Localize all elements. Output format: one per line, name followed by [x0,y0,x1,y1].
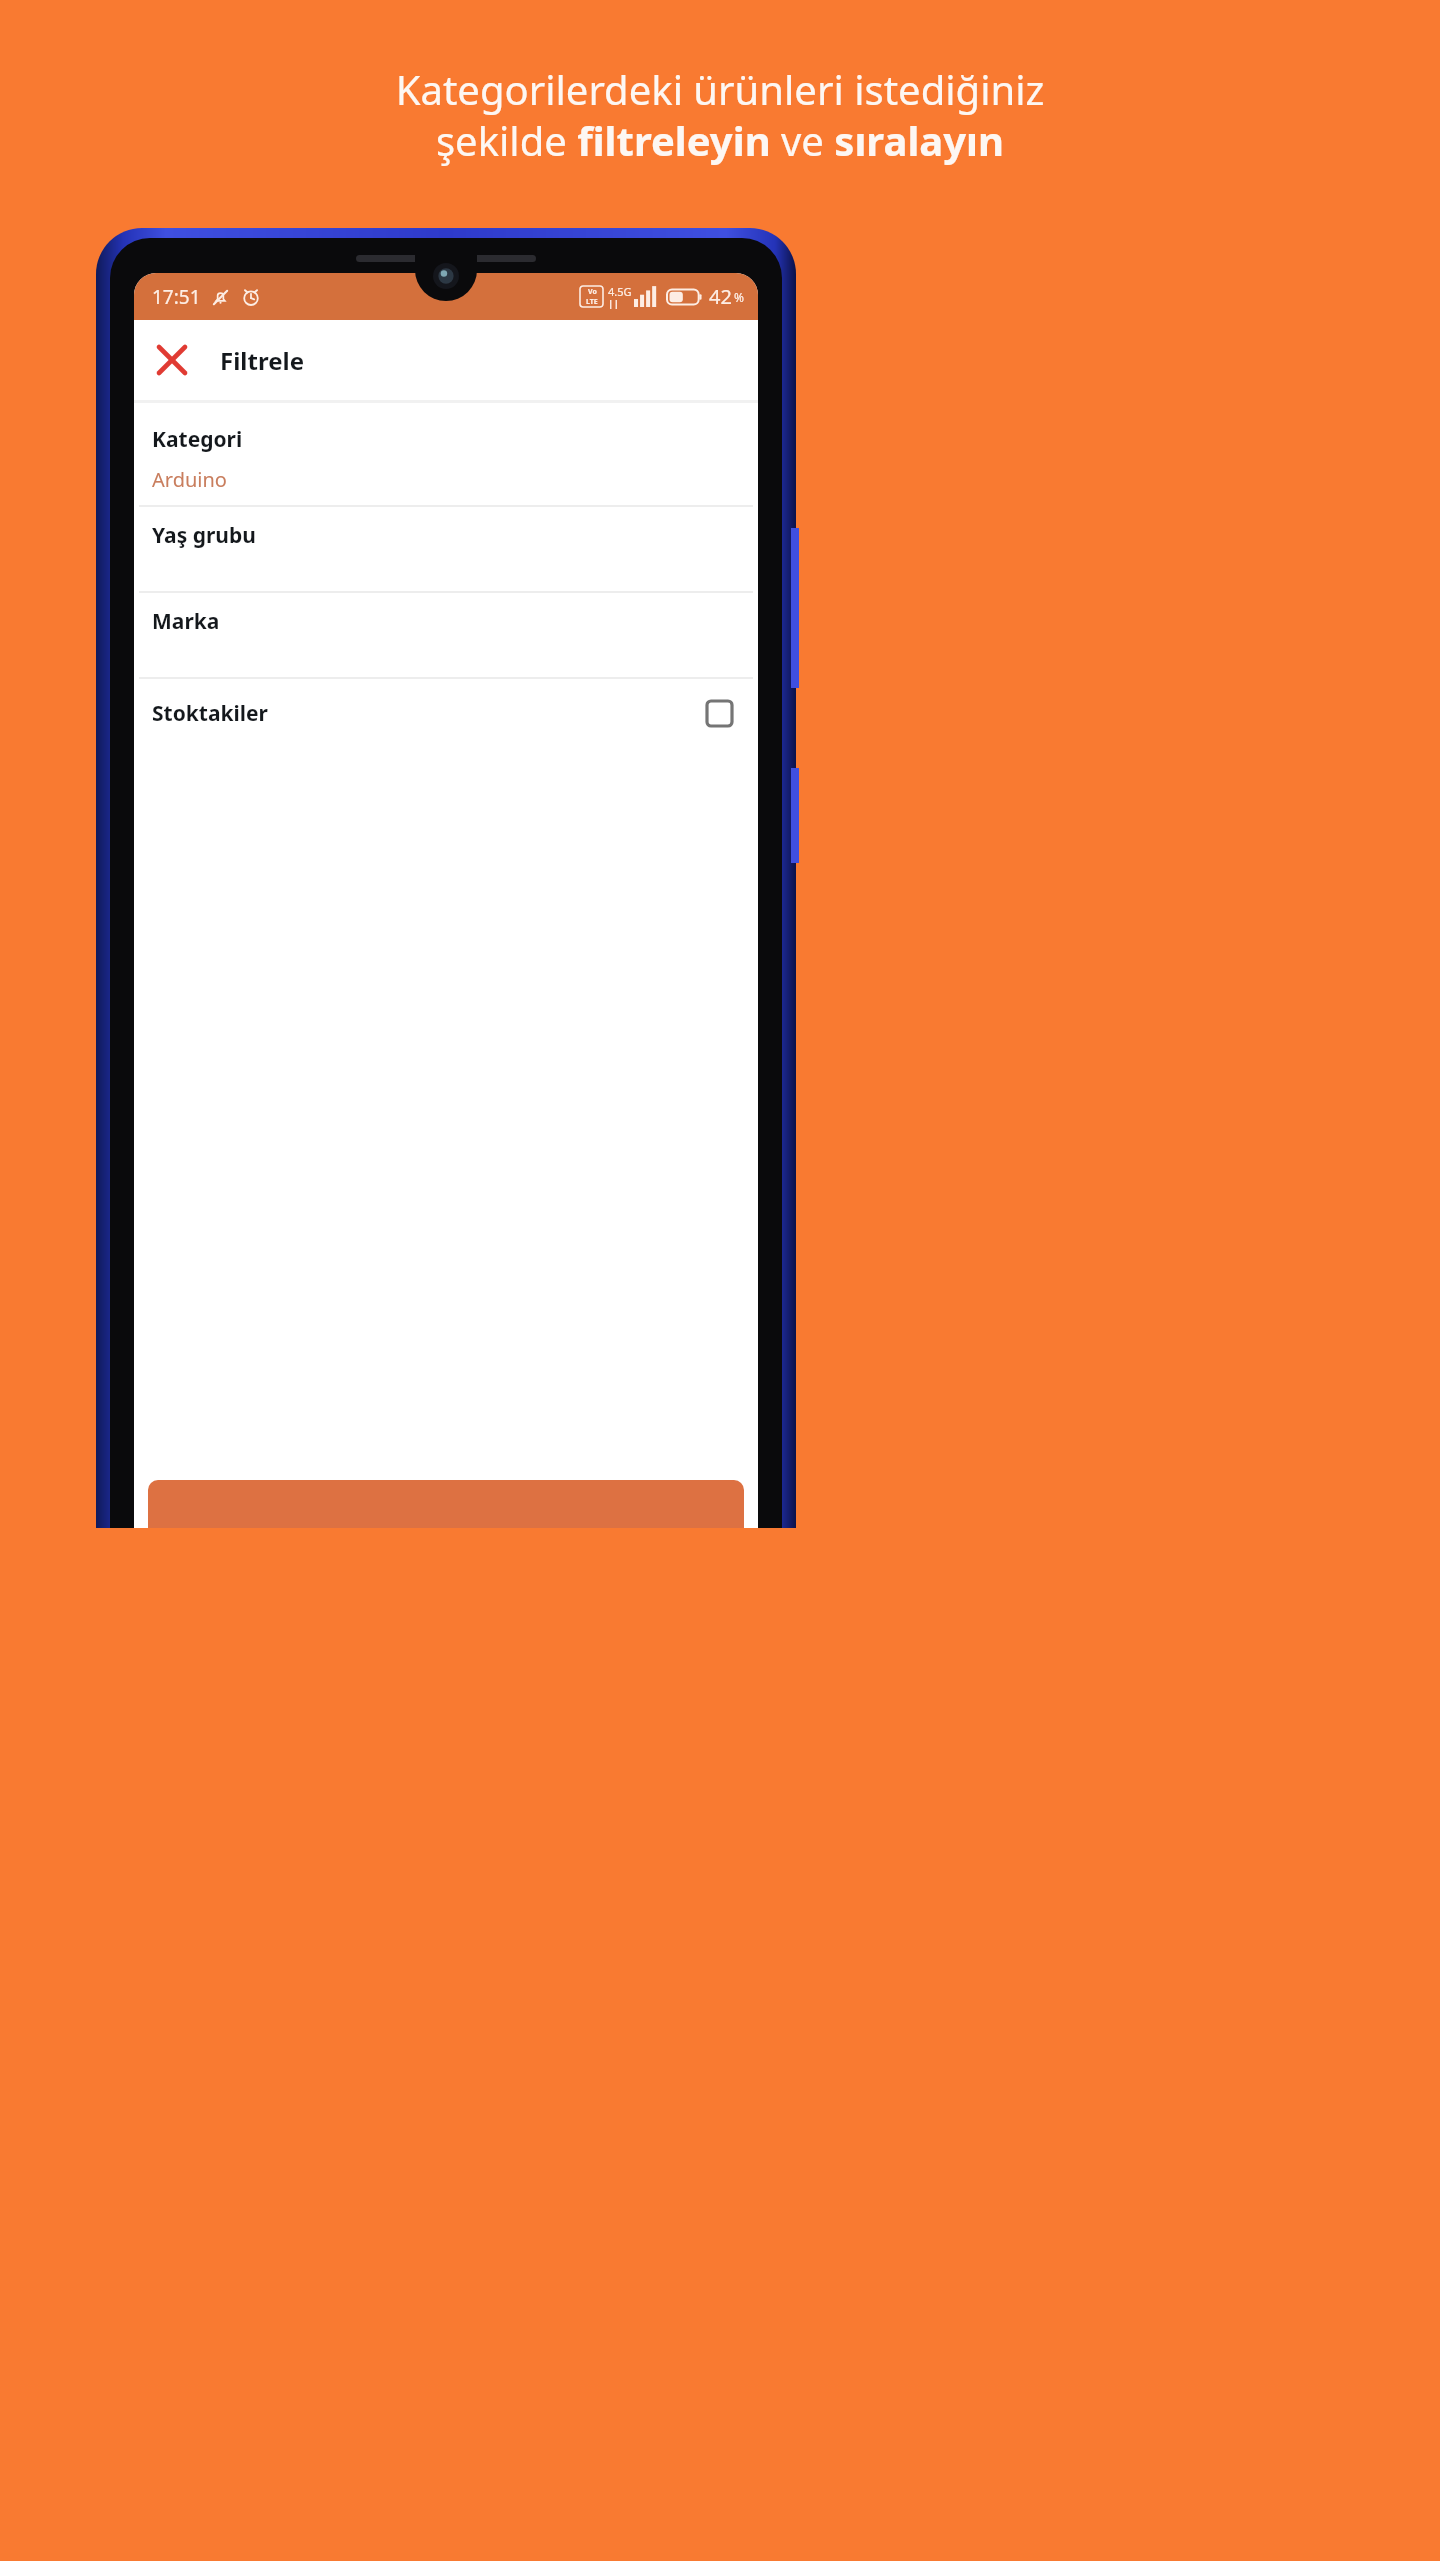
staticText: Stoktakiler [152,699,269,728]
staticText: LTE [586,297,598,307]
staticText: Filtrele [220,344,304,377]
staticText: 4.5G [608,284,632,299]
staticText: Kategori [152,425,243,454]
staticText: 17:51 [152,284,201,310]
staticText: Vo [588,287,597,297]
button[interactable]: Stoktakiler [134,679,758,747]
staticText: Arduino [152,466,227,493]
button[interactable]: Kategori [134,403,758,505]
button[interactable]: Close [146,334,198,386]
staticText: Yaş grubu [152,521,256,550]
button[interactable]: Marka [134,593,758,677]
staticText: Kategorilerdeki ürünleri istediğiniz şek… [40,62,1400,168]
staticText: Marka [152,607,220,636]
staticText: % [734,289,744,305]
button[interactable] [148,1480,744,1528]
button[interactable]: Yaş grubu [134,507,758,591]
staticText: 42 [709,283,732,310]
